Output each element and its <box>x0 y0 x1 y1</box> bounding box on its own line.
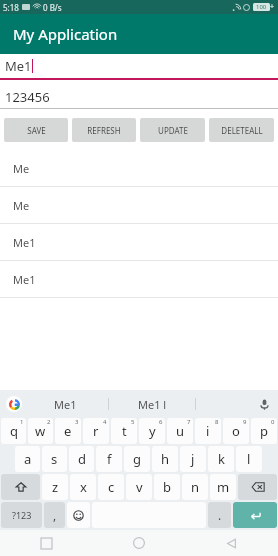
staticText: a <box>24 450 32 468</box>
staticText: 100 <box>256 3 267 11</box>
staticText: q <box>10 422 18 440</box>
button[interactable]: v <box>126 474 152 500</box>
staticText: + <box>270 2 275 12</box>
staticText: d <box>78 450 86 468</box>
staticText: z <box>52 478 59 496</box>
staticText: 0 <box>271 418 275 426</box>
button[interactable]: x <box>70 474 96 500</box>
button[interactable]: 123456 <box>0 86 278 109</box>
button[interactable]: Me1 <box>22 390 108 418</box>
button[interactable]: d <box>69 446 94 472</box>
button[interactable]: g <box>124 446 150 472</box>
staticText: v <box>136 478 143 496</box>
staticText: y <box>149 422 156 440</box>
button[interactable]: Me1 <box>0 261 278 298</box>
staticText: h <box>161 450 170 468</box>
button[interactable]: SAVE <box>4 118 68 142</box>
staticText: c <box>108 478 115 496</box>
staticText: j <box>191 450 195 468</box>
staticText: Me1 <box>5 57 32 75</box>
button[interactable]: r <box>83 418 109 444</box>
staticText: Me <box>13 161 30 176</box>
button[interactable]: Home <box>92 530 185 556</box>
button[interactable]: h <box>152 446 178 472</box>
staticText: 5:18 <box>3 2 19 13</box>
button[interactable]: j <box>180 446 206 472</box>
button[interactable]: Emoji <box>67 502 90 528</box>
staticText: w <box>35 422 46 440</box>
button[interactable]: Me <box>0 150 278 187</box>
staticText: n <box>191 478 200 496</box>
button[interactable]: b <box>154 474 180 500</box>
button[interactable]: Back <box>185 530 278 556</box>
staticText: 9 <box>243 418 247 426</box>
button[interactable]: Enter <box>233 502 277 528</box>
button[interactable]: m <box>210 474 236 500</box>
staticText: . <box>218 507 222 523</box>
staticText: Me <box>13 198 30 213</box>
button[interactable]: e <box>55 418 81 444</box>
staticText: SAVE <box>27 125 46 136</box>
button[interactable]: o <box>223 418 249 444</box>
button[interactable]: u <box>167 418 193 444</box>
button[interactable]: n <box>182 474 208 500</box>
staticText: 5 <box>131 418 135 426</box>
button[interactable]: Shift <box>1 474 40 500</box>
button[interactable]: ?123 <box>1 502 42 528</box>
button[interactable]: l <box>236 446 262 472</box>
staticText: , <box>53 507 57 523</box>
button[interactable]: c <box>98 474 124 500</box>
button[interactable]: Me <box>0 187 278 224</box>
staticText: 3 <box>75 418 79 426</box>
staticText: 6 <box>159 418 163 426</box>
button[interactable]: . <box>208 502 231 528</box>
staticText: i <box>206 422 210 440</box>
staticText: Me1 <box>13 272 36 287</box>
button[interactable]: p <box>251 418 277 444</box>
staticText: 123456 <box>5 88 50 106</box>
button[interactable]: Google <box>6 396 22 412</box>
button[interactable]: DELETEALL <box>209 118 274 142</box>
button[interactable]: Me1 <box>0 54 278 80</box>
button[interactable]: Recents <box>0 530 92 556</box>
staticText: s <box>51 450 58 468</box>
button[interactable]: k <box>208 446 234 472</box>
button[interactable]: s <box>42 446 67 472</box>
staticText: p <box>260 422 268 440</box>
staticText: REFRESH <box>87 125 121 136</box>
staticText: x <box>80 478 87 496</box>
staticText: UPDATE <box>158 125 188 136</box>
staticText: g <box>133 450 141 468</box>
staticText: e <box>64 422 72 440</box>
button[interactable]: f <box>96 446 122 472</box>
staticText: t <box>122 422 127 440</box>
staticText: 4 <box>103 418 107 426</box>
staticText: k <box>218 450 225 468</box>
button[interactable]: Me1 l <box>109 390 195 418</box>
staticText: r <box>93 422 99 440</box>
staticText: 0 B/s <box>43 2 62 13</box>
button[interactable]: Backspace <box>238 474 277 500</box>
button[interactable]: y <box>139 418 165 444</box>
staticText: 7 <box>187 418 191 426</box>
button[interactable]: t <box>111 418 137 444</box>
button[interactable]: z <box>42 474 68 500</box>
button[interactable]: Me1 <box>0 224 278 261</box>
staticText: o <box>232 422 240 440</box>
button[interactable]: UPDATE <box>140 118 205 142</box>
staticText: l <box>247 450 251 468</box>
button[interactable]: i <box>195 418 221 444</box>
button[interactable]: , <box>44 502 65 528</box>
staticText: Me1 <box>13 235 36 250</box>
staticText: My Application <box>13 24 118 44</box>
staticText: 2 <box>47 418 51 426</box>
button[interactable]: q <box>1 418 26 444</box>
button[interactable]: w <box>28 418 53 444</box>
staticText: m <box>217 478 230 496</box>
button[interactable]: Voice input <box>256 396 272 412</box>
staticText: DELETEALL <box>221 125 263 136</box>
button[interactable]: REFRESH <box>72 118 136 142</box>
button[interactable]: a <box>15 446 40 472</box>
staticText: Me1 l <box>138 397 167 412</box>
